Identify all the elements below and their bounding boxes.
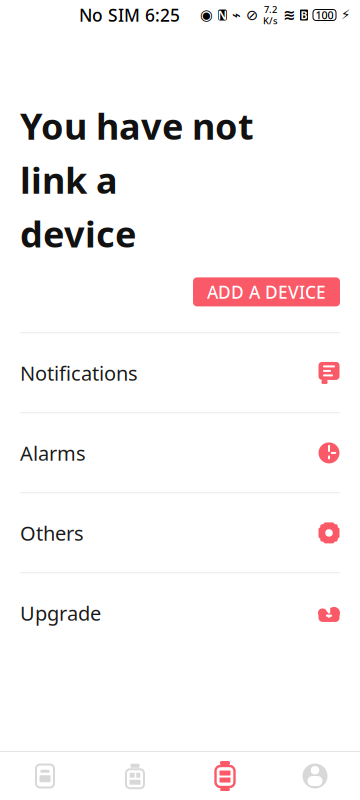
button[interactable]: Notifications: [0, 333, 360, 412]
button[interactable]: Others: [0, 493, 360, 572]
staticText: Notifications: [20, 360, 138, 386]
staticText: ≋: [283, 7, 295, 23]
staticText: ⌁: [232, 7, 241, 23]
staticText: K/s: [263, 14, 278, 27]
staticText: N: [217, 7, 227, 23]
staticText: ⊘: [246, 7, 258, 23]
button[interactable]: Add device: [90, 752, 180, 800]
staticText: No SIM 6:25: [79, 3, 180, 26]
staticText: You have not link a device: [20, 102, 254, 257]
staticText: Alarms: [20, 440, 86, 466]
button[interactable]: Reports: [0, 752, 90, 800]
staticText: ⚡︎: [341, 7, 350, 22]
staticText: 100: [315, 8, 333, 22]
staticText: Others: [20, 520, 84, 546]
button[interactable]: Upgrade: [0, 573, 360, 652]
button[interactable]: Alarms: [0, 413, 360, 492]
button[interactable]: ADD A DEVICE: [193, 277, 340, 306]
staticText: Upgrade: [20, 600, 101, 626]
staticText: 7.2: [264, 3, 277, 15]
button[interactable]: Devices: [180, 752, 270, 800]
staticText: ADD A DEVICE: [207, 280, 326, 303]
staticText: B: [300, 8, 307, 22]
staticText: ◉: [200, 7, 213, 23]
button[interactable]: Profile: [270, 752, 360, 800]
